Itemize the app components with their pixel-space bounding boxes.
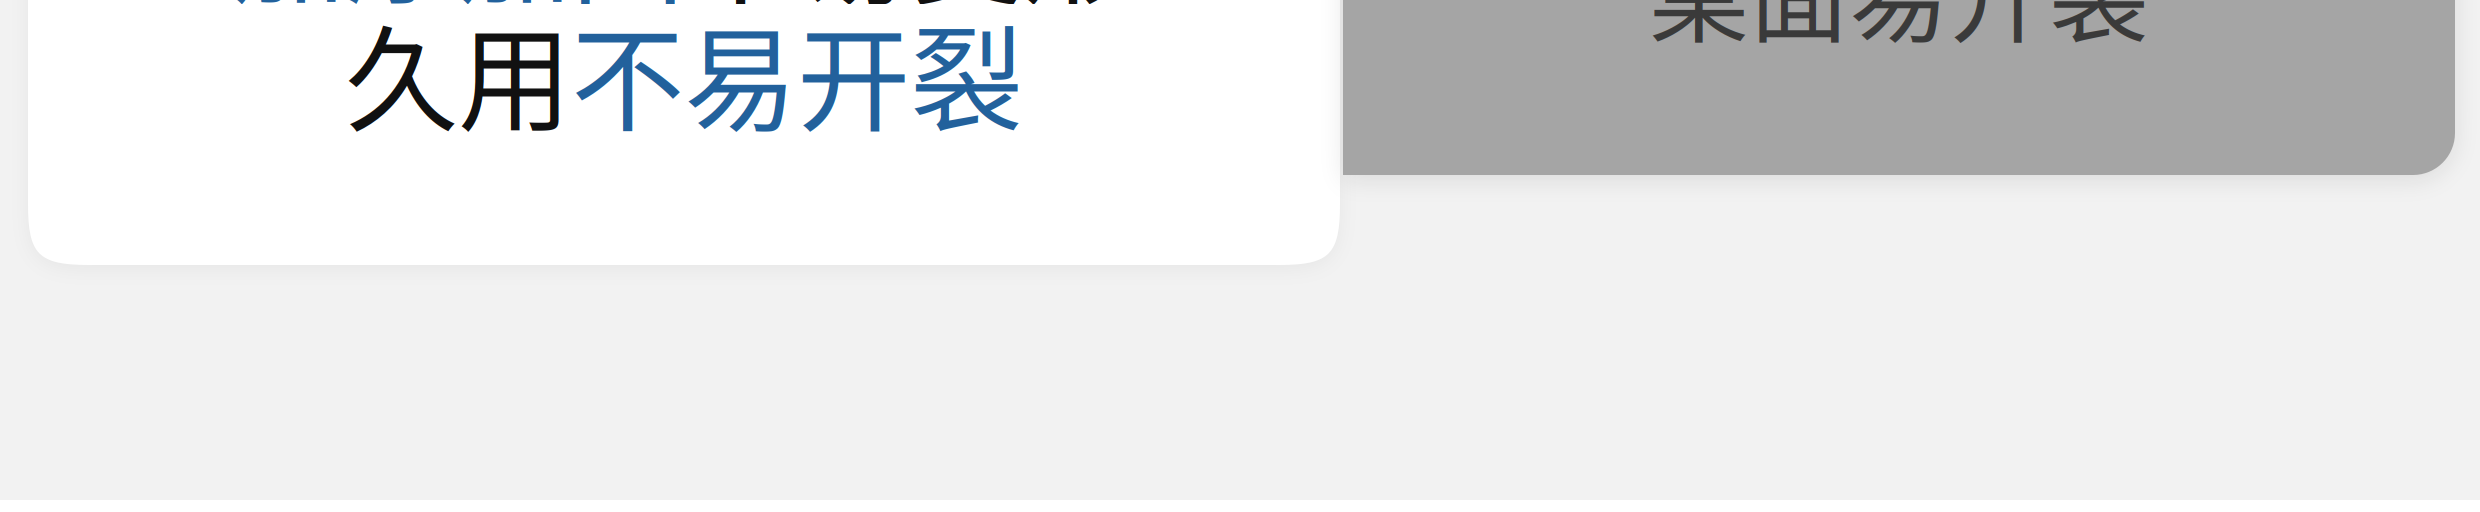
staticText: 桌面易开裂 — [1649, 0, 2149, 63]
button[interactable]: 桌面易开裂 — [1343, 0, 2455, 175]
staticText: 不易变形 — [684, 0, 1136, 27]
staticText: 加厚加固 — [232, 0, 684, 27]
staticText: 不易开裂 — [571, 0, 1023, 154]
button[interactable]: 加厚加固 — [28, 0, 1340, 265]
staticText: 久用 — [345, 0, 571, 154]
